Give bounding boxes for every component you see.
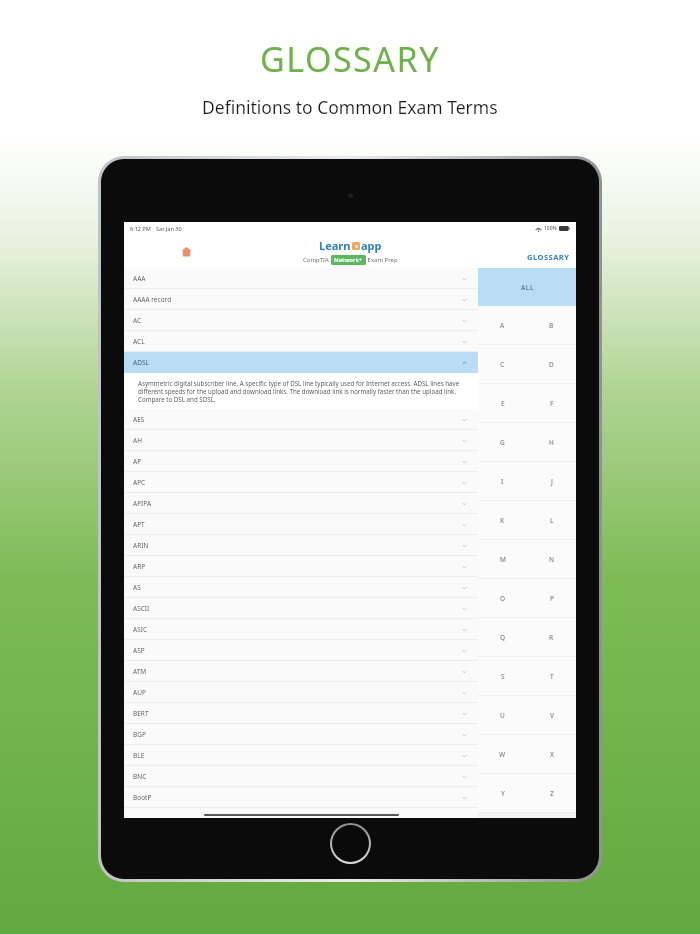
staticText: J (551, 477, 553, 486)
button[interactable]: G (478, 423, 527, 462)
button[interactable]: ARP (124, 556, 478, 577)
staticText: N (549, 555, 555, 564)
staticText: ASP (133, 646, 145, 655)
staticText: Learn (319, 238, 351, 253)
staticText: I (501, 477, 504, 486)
button[interactable]: P (527, 579, 576, 618)
staticText: BootP (133, 793, 152, 802)
button[interactable]: D (527, 345, 576, 384)
button[interactable]: BGP (124, 724, 478, 745)
button[interactable]: ARIN (124, 535, 478, 556)
button[interactable]: AES (124, 409, 478, 430)
button[interactable]: N (527, 540, 576, 579)
button[interactable]: ASP (124, 640, 478, 661)
staticText: Sat Jan 30 (156, 225, 182, 232)
button[interactable]: AAAA record (124, 289, 478, 310)
staticText: BLE (133, 751, 145, 760)
button[interactable]: BLE (124, 745, 478, 766)
button[interactable]: A (478, 306, 527, 345)
staticText: Network+ (334, 256, 363, 264)
button[interactable]: O (478, 579, 527, 618)
staticText: AES (133, 415, 145, 424)
button[interactable]: B (527, 306, 576, 345)
staticText: L (550, 516, 554, 525)
button[interactable]: AUP (124, 682, 478, 703)
button[interactable]: ACL (124, 331, 478, 352)
staticText: 100% (544, 225, 557, 232)
button[interactable]: AS (124, 577, 478, 598)
button[interactable]: L (527, 501, 576, 540)
button[interactable]: AH (124, 430, 478, 451)
staticText: AAAA record (133, 295, 172, 304)
staticText: BGP (133, 730, 146, 739)
staticText: W (499, 750, 506, 759)
staticText: BERT (133, 709, 149, 718)
staticText: T (550, 672, 554, 681)
button[interactable]: S (478, 657, 527, 696)
staticText: Y (501, 789, 505, 798)
staticText: E (501, 399, 505, 408)
button[interactable]: H (527, 423, 576, 462)
button[interactable]: ALL (478, 268, 576, 306)
button[interactable]: AP (124, 451, 478, 472)
button[interactable]: ASIC (124, 619, 478, 640)
button[interactable]: BNC (124, 766, 478, 787)
staticText: ARP (133, 562, 146, 571)
staticText: V (550, 711, 554, 720)
staticText: U (500, 711, 505, 720)
staticText: P (550, 594, 554, 603)
button[interactable]: ADSL (124, 352, 478, 373)
button[interactable]: APC (124, 472, 478, 493)
button[interactable]: AAA (124, 268, 478, 289)
button[interactable]: M (478, 540, 527, 579)
button[interactable]: BootP (124, 787, 478, 808)
button[interactable]: U (478, 696, 527, 735)
button[interactable]: T (527, 657, 576, 696)
button[interactable]: F (527, 384, 576, 423)
button[interactable]: I (478, 462, 527, 501)
staticText: Asymmetric digital subscriber line. A sp… (138, 379, 466, 403)
button[interactable]: X (527, 735, 576, 774)
button[interactable]: K (478, 501, 527, 540)
button[interactable]: Y (478, 774, 527, 813)
staticText: AH (133, 436, 142, 445)
staticText: Q (500, 633, 506, 642)
button[interactable]: C (478, 345, 527, 384)
staticText: GLOSSARY (527, 252, 570, 262)
staticText: Exam Prep (366, 256, 398, 264)
staticText: O (500, 594, 506, 603)
staticText: S (501, 672, 505, 681)
button[interactable]: Z (527, 774, 576, 813)
button[interactable]: ATM (124, 661, 478, 682)
staticText: X (550, 750, 554, 759)
staticText: H (549, 438, 554, 447)
button[interactable]: E (478, 384, 527, 423)
button[interactable]: GLOSSARY (527, 252, 570, 262)
staticText: 6:12 PM (130, 225, 151, 232)
button[interactable]: APIPA (124, 493, 478, 514)
button[interactable]: Home (180, 245, 193, 258)
staticText: Z (550, 789, 554, 798)
button[interactable]: APT (124, 514, 478, 535)
button[interactable]: BERT (124, 703, 478, 724)
button[interactable]: Q (478, 618, 527, 657)
staticText: GLOSSARY (260, 36, 440, 82)
button[interactable]: V (527, 696, 576, 735)
button[interactable]: ASCII (124, 598, 478, 619)
staticText: app (361, 238, 382, 253)
button[interactable]: AC (124, 310, 478, 331)
staticText: Definitions to Common Exam Terms (202, 95, 498, 119)
staticText: ADSL (133, 358, 149, 367)
staticText: M (500, 555, 506, 564)
button[interactable]: W (478, 735, 527, 774)
staticText: ARIN (133, 541, 149, 550)
button[interactable]: J (527, 462, 576, 501)
staticText: APC (133, 478, 146, 487)
staticText: ACL (133, 337, 145, 346)
button[interactable]: R (527, 618, 576, 657)
staticText: z (355, 242, 358, 250)
staticText: F (550, 399, 554, 408)
staticText: ATM (133, 667, 147, 676)
staticText: AC (133, 316, 142, 325)
staticText: K (500, 516, 505, 525)
